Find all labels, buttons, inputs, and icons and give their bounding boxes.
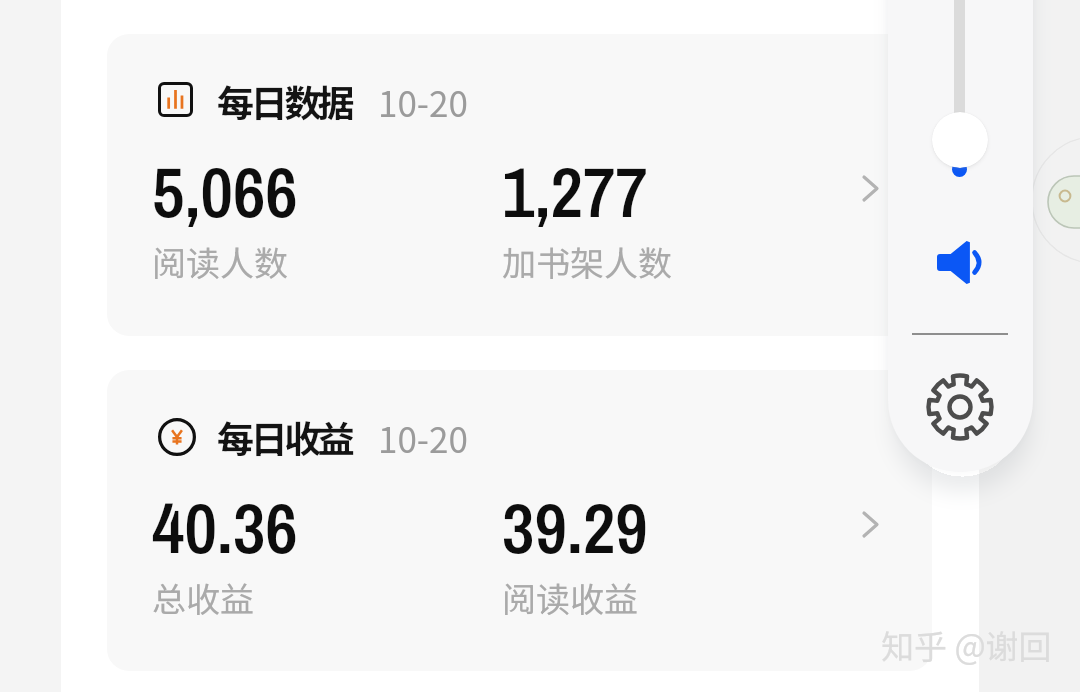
staticText: 5,066 [152,144,298,240]
button[interactable]: 每日数据 [107,34,932,336]
staticText: 阅读人数 [152,237,288,286]
staticText: 加书架人数 [502,237,672,286]
button[interactable] [148,140,488,280]
button[interactable] [498,476,838,616]
staticText: 知乎 @谢回 [881,621,1052,669]
button[interactable] [148,476,488,616]
button[interactable]: Settings [920,367,1000,447]
staticText: 10-20 [378,412,468,463]
staticText: 10-20 [378,76,468,127]
staticText: 每日收益 [217,410,352,464]
staticText: 39.29 [502,480,648,576]
button[interactable]: 每日收益 [107,370,932,671]
button[interactable] [498,140,838,280]
button[interactable]: Mute [928,232,992,292]
staticText: 阅读收益 [502,573,638,622]
staticText: 40.36 [152,480,298,576]
staticText: 总收益 [152,573,254,622]
staticText: 每日数据 [217,74,352,128]
staticText: 1,277 [502,144,648,240]
button[interactable]: Volume level [932,112,988,168]
